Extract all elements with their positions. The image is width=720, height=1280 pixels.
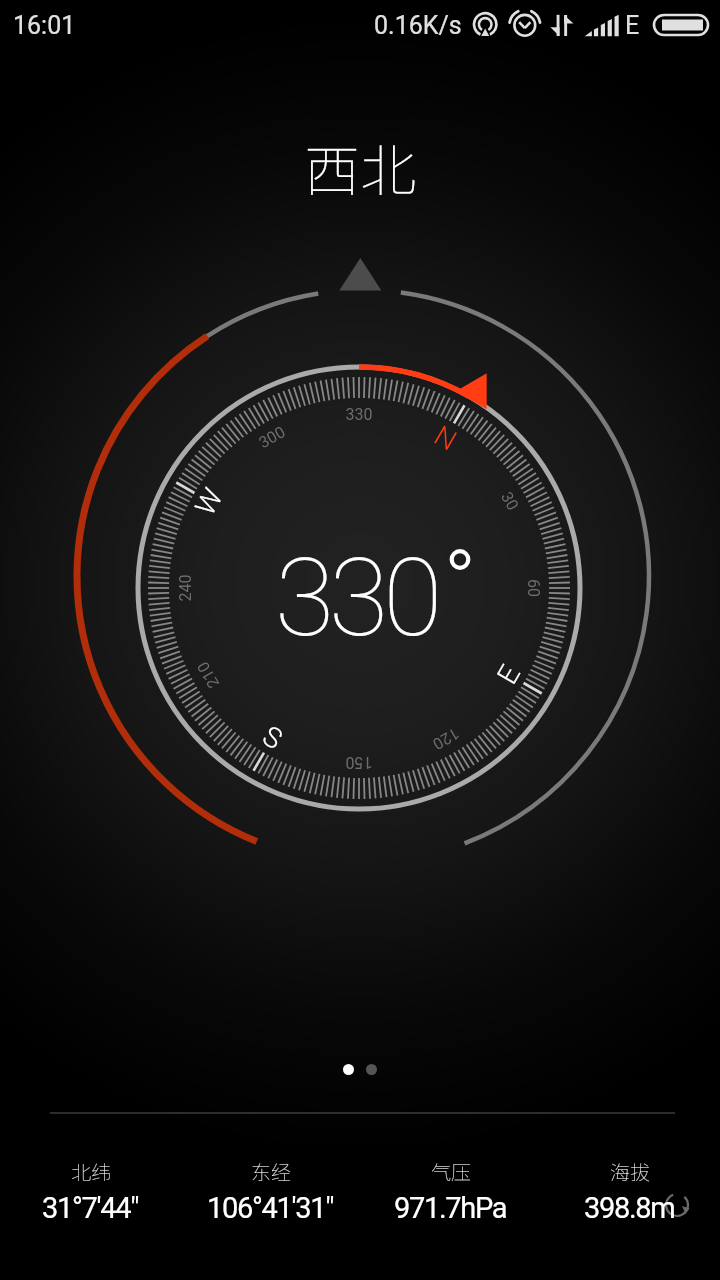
button[interactable]: 东经 bbox=[190, 1157, 350, 1227]
button[interactable]: 西北 bbox=[0, 126, 720, 196]
staticText: 16:01 bbox=[13, 11, 76, 40]
staticText: E bbox=[625, 11, 640, 40]
staticText: 北纬 bbox=[71, 1157, 111, 1186]
staticText: 海拔 bbox=[610, 1157, 650, 1186]
button[interactable]: Page 1, current bbox=[343, 1064, 354, 1075]
staticText: 西北 bbox=[304, 126, 416, 196]
staticText: 398.8m bbox=[584, 1191, 675, 1225]
button[interactable]: 北纬 bbox=[10, 1157, 170, 1227]
staticText: 31°7'44" bbox=[42, 1191, 139, 1225]
staticText: 106°41'31" bbox=[207, 1191, 334, 1225]
button[interactable]: 气压 bbox=[370, 1157, 530, 1227]
button[interactable]: Page 2 bbox=[366, 1064, 377, 1075]
staticText: 气压 bbox=[431, 1157, 471, 1186]
staticText: 东经 bbox=[251, 1157, 291, 1186]
staticText: 0.16K/s bbox=[374, 11, 462, 40]
staticText: 971.7hPa bbox=[394, 1191, 507, 1225]
button[interactable]: 海拔 bbox=[549, 1157, 709, 1227]
